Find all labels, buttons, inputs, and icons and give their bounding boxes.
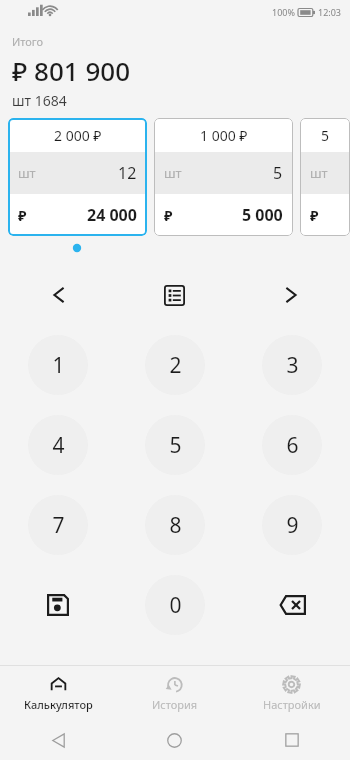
button[interactable]: 5 xyxy=(145,415,205,475)
staticText: 5 xyxy=(273,162,283,184)
button[interactable]: 0 xyxy=(145,575,205,635)
staticText: ₽ xyxy=(310,206,319,225)
staticText: 8 xyxy=(169,511,182,540)
button[interactable]: История xyxy=(116,666,233,720)
button[interactable]: 4 xyxy=(28,415,88,475)
staticText: Калькулятор xyxy=(24,697,93,712)
staticText: 0 xyxy=(169,591,182,620)
button[interactable]: 9 xyxy=(262,495,322,555)
button[interactable]: Настройки xyxy=(233,666,350,720)
staticText: 6 xyxy=(286,431,299,460)
staticText: шт xyxy=(164,164,182,182)
staticText: История xyxy=(152,697,198,712)
button[interactable]: 1 xyxy=(28,335,88,395)
button[interactable]: 2 000 ₽ xyxy=(8,118,147,236)
staticText: шт xyxy=(18,164,36,182)
staticText: 7 xyxy=(52,511,65,540)
button[interactable]: Recents xyxy=(233,720,350,760)
staticText: 2 000 ₽ xyxy=(54,126,102,145)
staticText: 100% xyxy=(272,6,295,18)
staticText: 3 xyxy=(286,351,299,380)
staticText: 2 xyxy=(169,351,182,380)
staticText: Настройки xyxy=(263,697,321,712)
staticText: 5 000 xyxy=(242,204,283,226)
staticText: ₽ xyxy=(18,206,27,225)
staticText: шт xyxy=(310,164,328,182)
staticText: 5 xyxy=(321,126,330,145)
button[interactable]: Калькулятор xyxy=(0,666,116,720)
staticText: Итого xyxy=(12,34,44,49)
staticText: 9 xyxy=(286,511,299,540)
button[interactable]: 2 xyxy=(145,335,205,395)
staticText: 4 xyxy=(52,431,65,460)
button[interactable]: Home xyxy=(116,720,233,760)
button[interactable]: Next xyxy=(233,275,350,315)
button[interactable]: 1 000 ₽ xyxy=(154,118,293,236)
button[interactable]: 6 xyxy=(262,415,322,475)
staticText: 1 000 ₽ xyxy=(200,126,248,145)
button[interactable]: 5 xyxy=(300,118,350,236)
staticText: шт 1684 xyxy=(12,91,67,110)
button[interactable]: 7 xyxy=(28,495,88,555)
button[interactable]: Save xyxy=(28,575,88,635)
staticText: 12 xyxy=(118,162,137,184)
button[interactable]: 8 xyxy=(145,495,205,555)
button[interactable]: Previous xyxy=(0,275,116,315)
staticText: ₽ 801 900 xyxy=(12,53,131,88)
staticText: 24 000 xyxy=(87,204,137,226)
button[interactable]: Back xyxy=(0,720,116,760)
staticText: 1 xyxy=(52,351,65,380)
staticText: 12:03 xyxy=(318,6,342,18)
button[interactable]: List xyxy=(116,275,233,315)
staticText: ₽ xyxy=(164,206,173,225)
staticText: 5 xyxy=(169,431,182,460)
button[interactable]: 3 xyxy=(262,335,322,395)
button[interactable]: Backspace xyxy=(262,575,322,635)
